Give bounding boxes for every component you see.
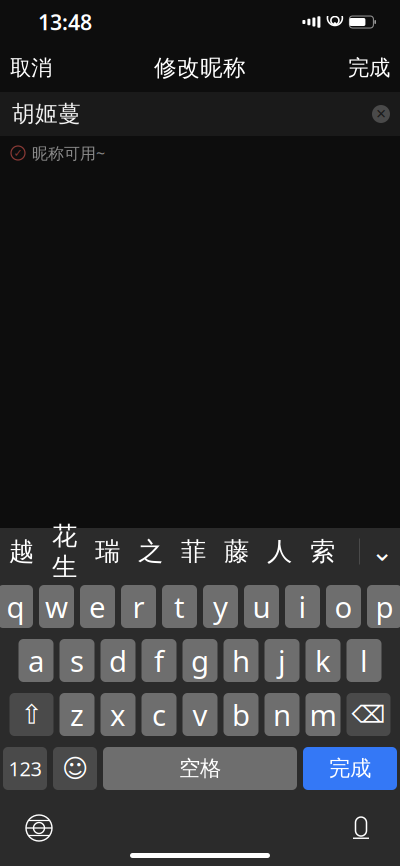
staticText: 藤 [224,536,249,567]
button[interactable]: b [223,693,258,736]
button[interactable]: a [18,639,53,682]
button[interactable]: e [80,585,115,628]
staticText: y [213,587,228,626]
button[interactable]: r [121,585,156,628]
button[interactable]: t [162,585,197,628]
staticText: z [70,695,84,734]
button[interactable]: 之 [129,529,172,573]
staticText: 花生 [52,520,77,583]
staticText: 昵称可用~ [32,142,105,164]
staticText: p [375,587,393,626]
staticText: ⌄ [371,536,393,567]
button[interactable]: 索 [301,529,344,573]
staticText: x [110,695,126,734]
staticText: v [192,695,207,734]
staticText: s [70,641,84,680]
staticText: 13:48 [38,8,92,36]
button[interactable]: 收起候选 [360,529,400,573]
staticText: l [360,641,368,680]
staticText: c [152,695,166,734]
button[interactable]: 瑞 [86,529,129,573]
staticText: 123 [8,755,41,782]
button[interactable]: f [141,639,176,682]
staticText: a [28,641,44,680]
button[interactable]: x [100,693,135,736]
button[interactable]: i [285,585,320,628]
staticText: u [252,587,270,626]
staticText: b [232,695,250,734]
staticText: m [309,695,336,734]
button[interactable]: g [182,639,217,682]
button[interactable]: d [100,639,135,682]
button[interactable]: l [346,639,381,682]
button[interactable]: m [305,693,340,736]
staticText: 越 [9,536,34,567]
button[interactable]: 语音输入 [334,805,388,851]
button[interactable]: w [39,585,74,628]
staticText: o [334,587,352,626]
button[interactable]: 空格 [103,747,297,790]
button[interactable]: Shift [9,693,53,736]
staticText: ✓ [13,147,22,159]
button[interactable]: 表情 [53,747,97,790]
button[interactable]: 菲 [172,529,215,573]
button[interactable]: k [305,639,340,682]
staticText: 胡姬蔓 [12,100,81,128]
staticText: k [315,641,331,680]
staticText: r [132,587,144,626]
staticText: w [45,587,68,626]
button[interactable]: v [182,693,217,736]
staticText: j [278,641,286,680]
staticText: 完成 [348,55,390,81]
staticText: g [191,641,209,680]
staticText: n [273,695,291,734]
button[interactable]: 完成 [303,747,397,790]
staticText: e [89,587,106,626]
button[interactable]: 删除 [346,693,390,736]
staticText: ☺ [62,754,88,783]
staticText: 空格 [179,755,221,782]
button[interactable]: q [0,585,33,628]
button[interactable]: y [203,585,238,628]
staticText: 修改昵称 [154,54,246,82]
button[interactable]: o [326,585,361,628]
button[interactable]: j [264,639,299,682]
button[interactable]: 越 [0,529,43,573]
button[interactable]: 清除 [364,92,398,136]
staticText: d [109,641,127,680]
button[interactable]: h [223,639,258,682]
staticText: 之 [138,536,163,567]
staticText: 取消 [10,55,52,81]
staticText: 菲 [181,536,206,567]
button[interactable]: 花生 [43,529,86,573]
staticText: h [232,641,250,680]
button[interactable]: 取消 [0,46,66,90]
button[interactable]: 切换输入法 [12,805,66,851]
staticText: ⌫ [351,701,385,728]
staticText: ⇧ [20,699,42,730]
button[interactable]: s [59,639,94,682]
staticText: ✕ [375,106,386,121]
staticText: t [174,587,185,626]
button[interactable]: 完成 [334,46,400,90]
button[interactable]: p [367,585,400,628]
staticText: 瑞 [95,536,120,567]
staticText: 索 [310,536,335,567]
button[interactable]: u [244,585,279,628]
button[interactable]: c [141,693,176,736]
staticText: q [6,587,24,626]
staticText: 完成 [329,755,371,782]
button[interactable]: 人 [258,529,301,573]
button[interactable]: 藤 [215,529,258,573]
staticText: f [154,641,164,680]
button[interactable]: n [264,693,299,736]
button[interactable]: 123 [3,747,47,790]
staticText: 人 [267,536,292,567]
staticText: i [298,587,306,626]
button[interactable]: z [59,693,94,736]
